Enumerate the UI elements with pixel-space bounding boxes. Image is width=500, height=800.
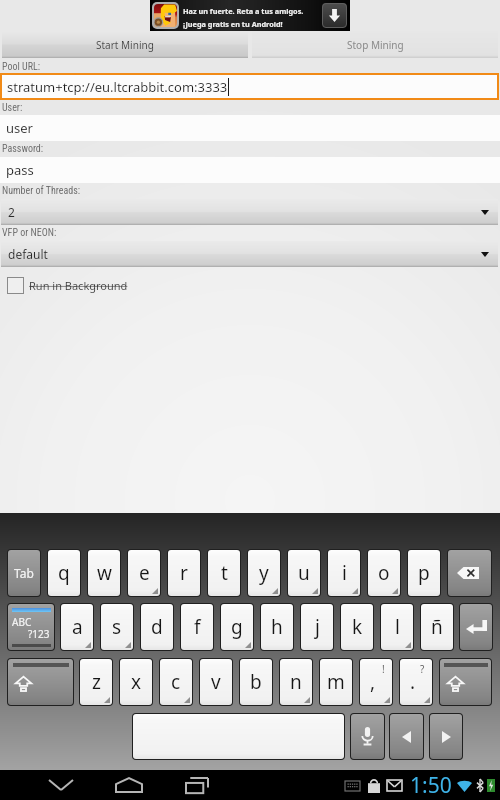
button[interactable]: ? xyxy=(400,659,432,705)
staticText: e xyxy=(139,560,150,586)
button[interactable]: Shift xyxy=(8,659,73,705)
button[interactable]: u xyxy=(288,550,320,596)
staticText: d xyxy=(151,614,163,640)
staticText: . xyxy=(410,669,416,695)
button[interactable]: ñ xyxy=(421,604,453,650)
staticText: default xyxy=(8,246,48,262)
staticText: t xyxy=(221,560,228,586)
button[interactable]: k xyxy=(341,604,373,650)
staticText: User: xyxy=(2,102,23,114)
button[interactable]: Run in Background xyxy=(0,276,500,295)
button[interactable]: c xyxy=(160,659,192,705)
staticText: Tab xyxy=(14,565,34,581)
button[interactable]: Enter xyxy=(460,604,492,650)
button[interactable]: s xyxy=(101,604,133,650)
button[interactable]: Start Mining xyxy=(2,31,248,58)
staticText: a xyxy=(72,614,83,640)
staticText: g xyxy=(231,614,243,640)
staticText: u xyxy=(298,560,310,586)
button[interactable]: Backspace xyxy=(448,550,491,596)
button[interactable]: g xyxy=(221,604,253,650)
staticText: stratum+tcp://eu.ltcrabbit.com:3333 xyxy=(7,78,228,96)
button[interactable]: f xyxy=(181,604,213,650)
button[interactable]: p xyxy=(408,550,440,596)
button[interactable]: stratum+tcp://eu.ltcrabbit.com:3333 xyxy=(2,75,497,98)
staticText: y xyxy=(259,560,269,586)
staticText: Run in Background xyxy=(29,278,128,293)
button[interactable]: n xyxy=(280,659,312,705)
staticText: p xyxy=(418,560,430,586)
staticText: k xyxy=(352,614,363,640)
button[interactable]: x xyxy=(120,659,152,705)
button[interactable]: Tab xyxy=(8,550,40,596)
button[interactable]: y xyxy=(248,550,280,596)
staticText: i xyxy=(342,560,347,586)
staticText: ¡Juega gratis en tu Android! xyxy=(183,19,283,29)
button[interactable]: v xyxy=(200,659,232,705)
button[interactable]: a xyxy=(61,604,93,650)
staticText: q xyxy=(58,560,70,586)
button[interactable]: Move right xyxy=(430,714,462,759)
button[interactable]: h xyxy=(261,604,293,650)
staticText: 2 xyxy=(8,204,15,220)
button[interactable]: Recent apps xyxy=(174,770,220,800)
staticText: Number of Threads: xyxy=(2,185,81,197)
staticText: 1:50 xyxy=(410,771,452,800)
staticText: o xyxy=(378,560,390,586)
staticText: ? xyxy=(420,662,425,676)
button[interactable]: Back xyxy=(38,770,84,800)
button[interactable]: Symbols xyxy=(8,604,54,650)
staticText: ! xyxy=(382,662,385,676)
staticText: j xyxy=(315,614,320,640)
button[interactable]: user xyxy=(0,115,500,141)
staticText: Stop Mining xyxy=(347,38,404,52)
staticText: pass xyxy=(6,161,34,179)
staticText: l xyxy=(395,614,400,640)
staticText: m xyxy=(327,669,345,695)
button[interactable]: l xyxy=(381,604,413,650)
button[interactable]: r xyxy=(168,550,200,596)
button[interactable]: q xyxy=(48,550,80,596)
staticText: v xyxy=(211,669,221,695)
staticText: Password: xyxy=(2,143,44,155)
button[interactable]: m xyxy=(320,659,352,705)
button[interactable]: b xyxy=(240,659,272,705)
button[interactable]: Move left xyxy=(390,714,423,759)
button[interactable]: Advertisement xyxy=(150,0,350,31)
button[interactable]: Install xyxy=(322,3,347,28)
button[interactable]: Space xyxy=(133,714,344,759)
staticText: c xyxy=(171,669,181,695)
staticText: z xyxy=(92,669,101,695)
staticText: w xyxy=(97,560,112,586)
button[interactable]: d xyxy=(141,604,173,650)
button[interactable]: pass xyxy=(0,157,500,183)
button[interactable]: ! xyxy=(360,659,392,705)
staticText: s xyxy=(112,614,122,640)
button[interactable]: j xyxy=(301,604,333,650)
staticText: f xyxy=(194,614,201,640)
button[interactable]: 2 xyxy=(1,199,498,225)
staticText: r xyxy=(180,560,188,586)
button[interactable]: e xyxy=(128,550,160,596)
button[interactable]: Stop Mining xyxy=(252,31,498,58)
staticText: VFP or NEON: xyxy=(2,227,57,239)
staticText: Start Mining xyxy=(96,38,154,52)
staticText: user xyxy=(6,119,33,137)
staticText: h xyxy=(271,614,283,640)
button[interactable]: i xyxy=(328,550,360,596)
button[interactable]: Shift xyxy=(440,659,491,705)
staticText: n xyxy=(290,669,302,695)
button[interactable]: w xyxy=(88,550,120,596)
staticText: b xyxy=(250,669,262,695)
staticText: ñ xyxy=(431,614,443,640)
button[interactable]: Home xyxy=(106,770,152,800)
button[interactable]: Voice input xyxy=(351,714,384,759)
button[interactable]: default xyxy=(1,241,498,267)
staticText: , xyxy=(370,669,376,695)
button[interactable]: z xyxy=(80,659,112,705)
button[interactable]: t xyxy=(208,550,240,596)
staticText: Haz un fuerte. Reta a tus amigos. xyxy=(183,6,304,16)
staticText: ABC xyxy=(12,615,32,629)
staticText: Pool URL: xyxy=(2,61,41,73)
button[interactable]: o xyxy=(368,550,400,596)
